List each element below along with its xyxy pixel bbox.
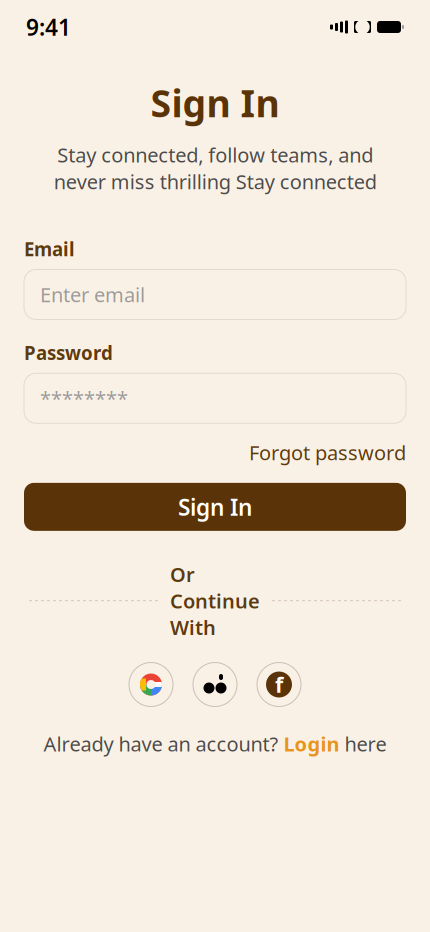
button[interactable]: Already have an account? [43,730,386,757]
button[interactable]: Continue with Google [129,662,173,706]
button[interactable]: Continue with Apple [193,662,237,706]
staticText: Stay connected, follow teams, and never … [53,142,376,195]
staticText: Email [24,237,75,261]
staticText: Or Continue With [170,561,260,640]
staticText: ******** [40,385,128,412]
staticText: 9:41 [26,12,71,42]
staticText: Sign In [150,78,279,128]
staticText: Sign In [178,492,252,522]
staticText: Login [283,730,339,757]
staticText: Enter email [40,281,145,308]
button[interactable]: Continue with Facebook [257,662,301,706]
button[interactable]: Sign In [24,483,406,531]
staticText: Password [24,340,113,365]
staticText: f [275,670,283,699]
staticText: here [344,730,386,757]
staticText: Forgot password [249,439,406,466]
button[interactable]: Forgot password [249,439,406,466]
staticText: Already have an account? [43,730,278,757]
